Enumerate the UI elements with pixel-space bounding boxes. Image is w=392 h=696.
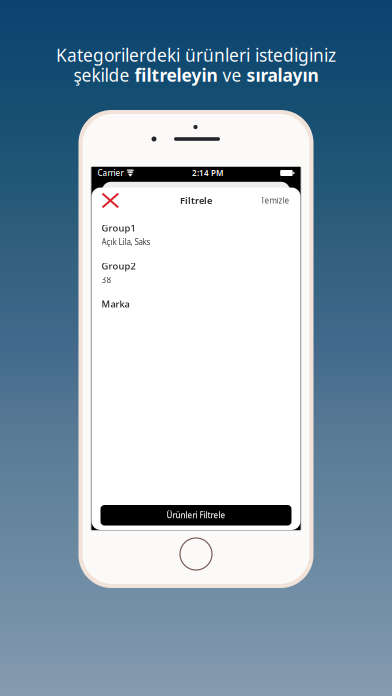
button[interactable]: Group2 — [91, 260, 300, 298]
button[interactable]: Close — [101, 188, 127, 212]
staticText: Marka — [101, 298, 129, 310]
staticText: Temizle — [260, 195, 289, 206]
button[interactable]: Ürünleri Filtrele — [100, 505, 291, 525]
staticText: filtreleyin — [134, 63, 217, 86]
staticText: Kategorilerdeki ürünleri istediginiz — [56, 43, 336, 66]
button[interactable]: Marka — [91, 298, 300, 336]
staticText: ve — [217, 63, 246, 86]
button[interactable]: Temizle — [260, 188, 289, 212]
staticText: şekilde — [73, 63, 134, 86]
staticText: Group1 — [101, 222, 135, 234]
staticText: Carrier — [97, 168, 123, 178]
staticText: 2:14 PM — [192, 168, 223, 178]
staticText: Ürünleri Filtrele — [166, 510, 225, 520]
staticText: Group2 — [101, 260, 135, 272]
staticText: 38 — [101, 275, 111, 285]
button[interactable]: Group1 — [91, 222, 300, 260]
staticText: Açık Lila, Saks — [101, 237, 150, 247]
staticText: Filtrele — [180, 194, 212, 207]
staticText: sıralayın — [246, 63, 318, 86]
